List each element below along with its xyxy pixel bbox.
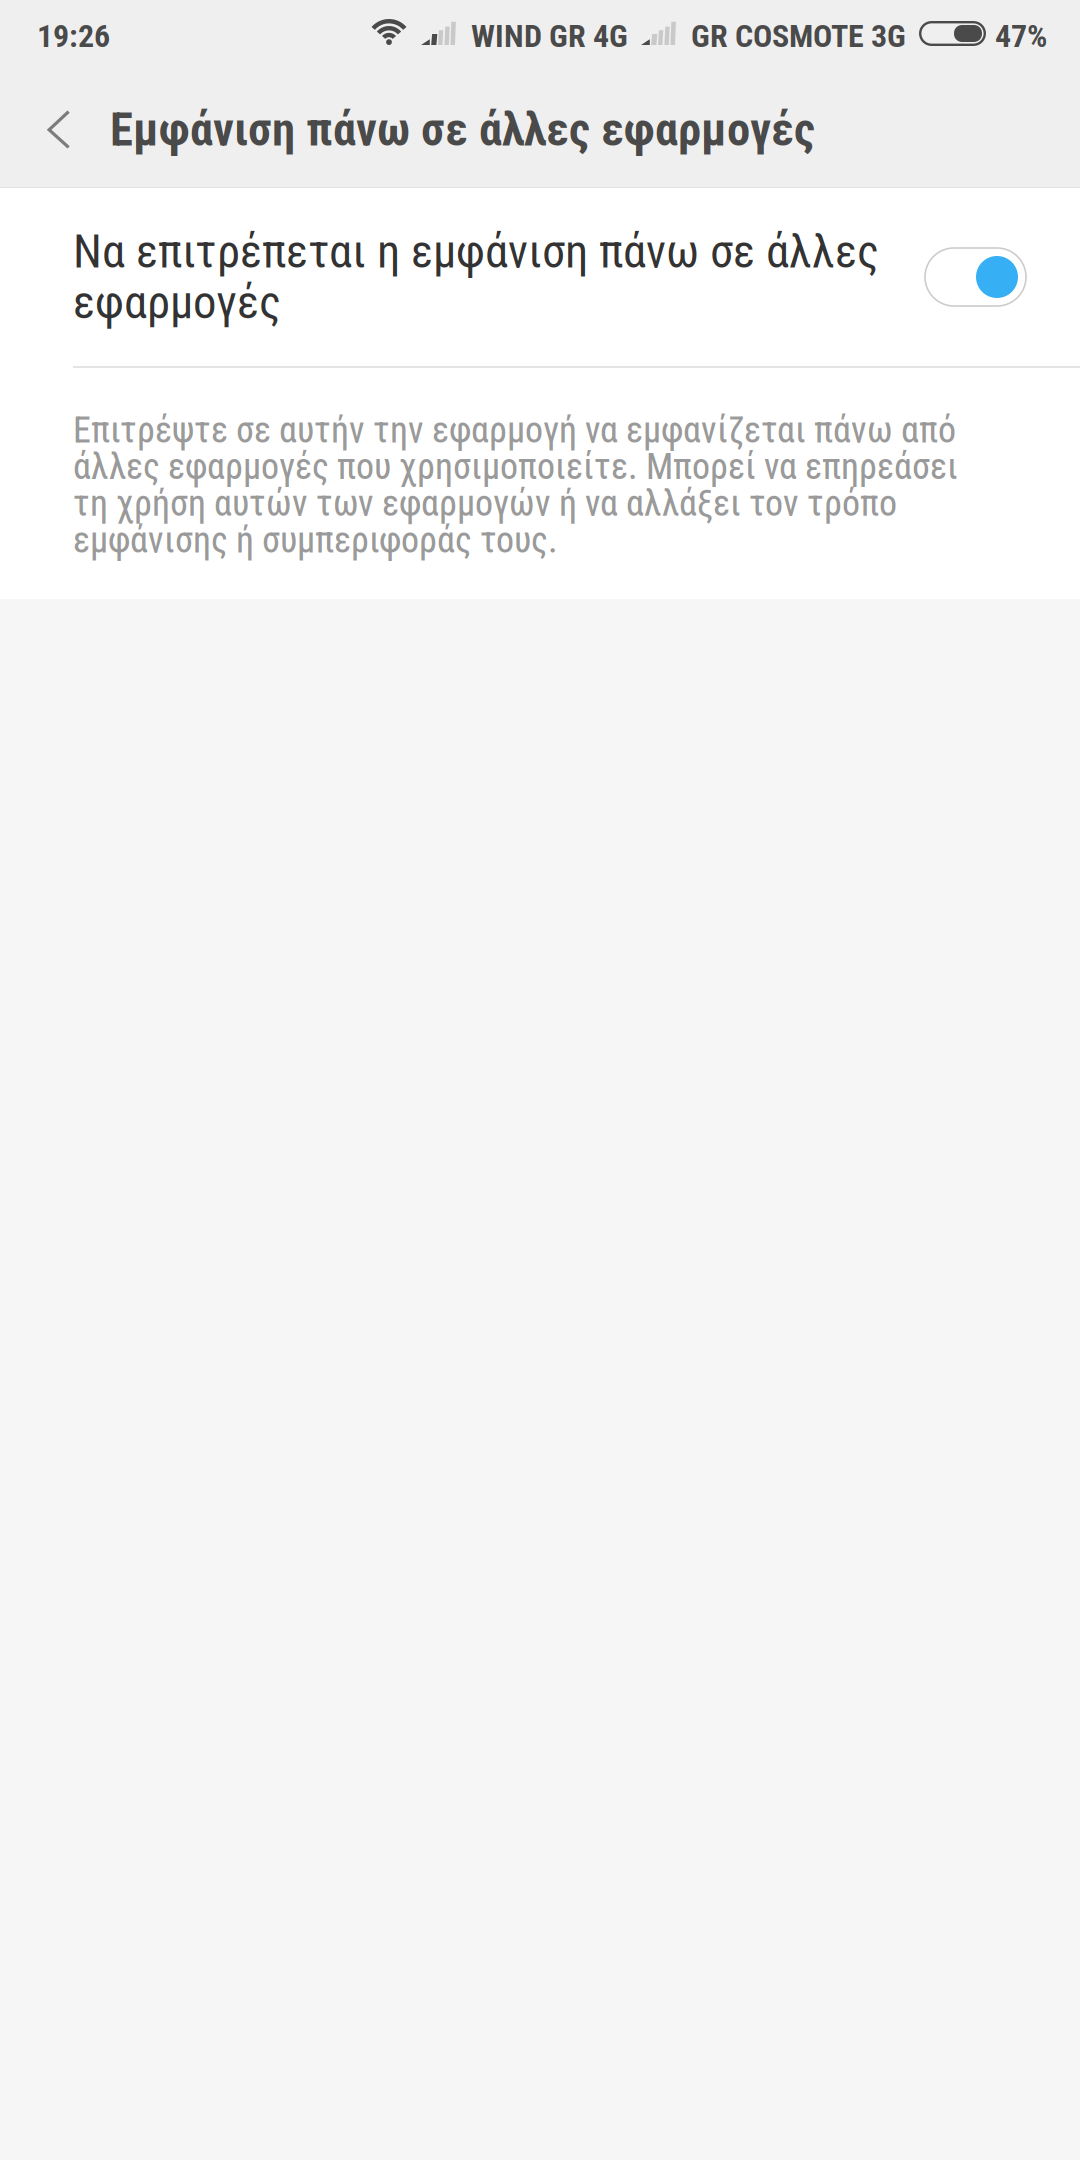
staticText: Επιτρέψτε σε αυτήν την εφαρμογή να εμφαν… — [73, 409, 958, 561]
staticText: Εμφάνιση πάνω σε άλλες εφαρμογές — [110, 102, 815, 157]
staticText: WIND GR 4G — [471, 17, 628, 55]
button[interactable]: Να επιτρέπεται η εμφάνιση πάνω σε άλλες … — [0, 188, 1080, 366]
staticText: 19:26 — [37, 17, 110, 55]
staticText: Να επιτρέπεται η εμφάνιση πάνω σε άλλες … — [73, 224, 879, 330]
staticText: GR COSMOTE 3G — [691, 17, 906, 55]
button[interactable]: Back — [8, 72, 110, 187]
staticText: 47% — [995, 17, 1047, 55]
